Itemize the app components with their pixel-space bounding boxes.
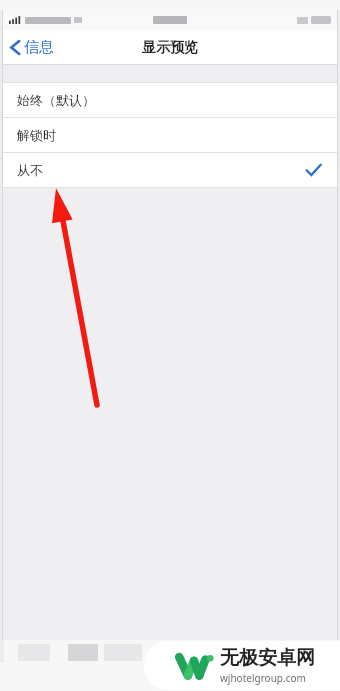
button[interactable]: 信息 bbox=[3, 30, 62, 65]
staticText: 信息 bbox=[24, 38, 54, 57]
staticText: 从不 bbox=[17, 162, 43, 178]
staticText: 始终（默认） bbox=[17, 92, 95, 108]
staticText: 解锁时 bbox=[17, 127, 56, 143]
staticText: 无极安卓网 bbox=[220, 646, 315, 670]
other: 无极安卓网 wjhotelgroup.com bbox=[144, 641, 340, 690]
button[interactable]: 解锁时 bbox=[3, 118, 337, 152]
button[interactable]: 从不 bbox=[3, 153, 337, 187]
button[interactable]: 始终（默认） bbox=[3, 83, 337, 117]
staticText: wjhotelgroup.com bbox=[220, 671, 306, 685]
staticText: 显示预览 bbox=[142, 39, 198, 57]
